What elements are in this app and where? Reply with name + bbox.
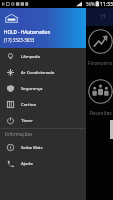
button[interactable]: Timer [0, 112, 86, 128]
staticText: Informações [5, 131, 33, 137]
staticText: Cortina [21, 101, 36, 107]
button[interactable]: Lâmpada [0, 48, 86, 64]
staticText: Segurança [21, 85, 43, 91]
staticText: Reuniões [90, 110, 112, 117]
staticText: 11:33 [100, 1, 113, 8]
staticText: Lâmpada [21, 53, 40, 59]
staticText: Ajuda [21, 160, 33, 166]
button[interactable]: Atalho [11, 28, 38, 55]
staticText: 56% [86, 1, 95, 7]
staticText: H [101, 12, 106, 20]
button[interactable]: Saiba Mais [0, 139, 86, 155]
button[interactable]: Ar Condicionado [0, 64, 86, 80]
staticText: (17) 3323-3633 [4, 37, 35, 43]
staticText: Financeiro [88, 60, 113, 67]
staticText: Timer [21, 117, 33, 123]
staticText: HOLD - HAutomation [4, 29, 51, 35]
staticText: Saiba Mais [21, 144, 43, 150]
button[interactable]: Segurança [0, 80, 86, 96]
button[interactable]: Atalho [50, 28, 77, 55]
button[interactable]: Ajuda [0, 155, 86, 171]
staticText: Ar Condicionado [21, 69, 55, 75]
button[interactable]: Financeiro [88, 28, 113, 55]
button[interactable]: Reuniões [88, 78, 113, 105]
button[interactable]: Cortina [0, 96, 86, 112]
button[interactable]: Atalho [11, 78, 38, 105]
